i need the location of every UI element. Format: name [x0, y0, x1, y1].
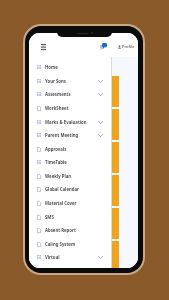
staticText: Home [45, 64, 58, 70]
staticText: Parent Meeting [45, 132, 79, 138]
staticText: Profile [122, 44, 135, 49]
button[interactable]: Material Cover [29, 196, 111, 210]
button[interactable]: SMS [29, 210, 111, 224]
button[interactable]: Home [29, 60, 111, 74]
button[interactable]: Absent Report [29, 223, 111, 237]
button[interactable]: Marks & Evaluation [29, 115, 111, 129]
button[interactable]: TimeTable [29, 155, 111, 169]
staticText: WorkSheet [45, 105, 69, 111]
staticText: Approvals [45, 146, 67, 152]
button[interactable]: Parent Meeting [29, 128, 111, 142]
button[interactable]: Virtual [29, 250, 111, 264]
button[interactable]: Open navigation menu [36, 40, 50, 54]
staticText: Global Calendar [45, 186, 79, 192]
button[interactable]: Approvals [29, 142, 111, 156]
button[interactable]: Caling System [29, 237, 111, 251]
staticText: Your Sons [45, 78, 66, 84]
staticText: Virtual [45, 254, 60, 260]
staticText: Weekly Plan [45, 173, 72, 179]
staticText: Marks & Evaluation [45, 119, 87, 125]
button[interactable]: Messages [97, 40, 109, 52]
button[interactable]: WorkSheet [29, 101, 111, 115]
button[interactable]: Weekly Plan [29, 169, 111, 183]
staticText: TimeTable [45, 159, 67, 165]
staticText: Material Cover [45, 200, 77, 206]
staticText: Assesments [45, 91, 71, 97]
staticText: Caling System [45, 241, 76, 247]
button[interactable]: Your Sons [29, 74, 111, 88]
button[interactable]: Global Calendar [29, 182, 111, 196]
button[interactable]: Profile [117, 42, 136, 51]
button[interactable]: Assesments [29, 87, 111, 101]
staticText: SMS [45, 214, 54, 220]
staticText: Absent Report [45, 227, 76, 233]
